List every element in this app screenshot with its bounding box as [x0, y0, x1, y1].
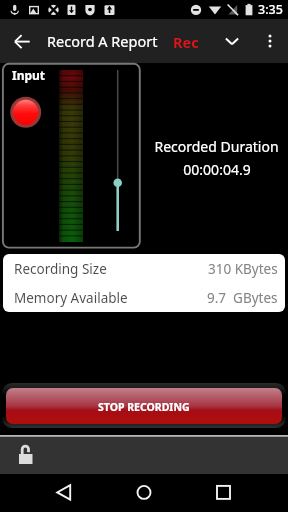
button[interactable]: Home: [114, 474, 174, 512]
staticText: Record A Report: [47, 31, 158, 51]
button[interactable]: Unlock: [0, 437, 46, 474]
staticText: STOP RECORDING: [98, 400, 190, 414]
button[interactable]: Expand: [212, 21, 252, 61]
staticText: 9.7 GBytes: [207, 289, 278, 307]
staticText: Recorded Duration: [154, 137, 279, 156]
button[interactable]: Memory Available: [3, 283, 285, 312]
button[interactable]: Navigate up: [0, 19, 44, 63]
staticText: 00:00:04.9: [183, 160, 251, 179]
staticText: Input: [12, 67, 46, 83]
button[interactable]: More options: [252, 23, 288, 59]
staticText: Rec: [173, 32, 199, 52]
button[interactable]: Recent apps: [201, 474, 261, 512]
button[interactable]: Back: [27, 474, 87, 512]
button[interactable]: Recording Size: [3, 254, 285, 283]
button[interactable]: STOP RECORDING: [6, 388, 282, 424]
staticText: 310 KBytes: [208, 260, 278, 278]
staticText: Memory Available: [14, 289, 128, 307]
staticText: Recording Size: [14, 260, 107, 278]
staticText: 3:35: [258, 1, 283, 18]
